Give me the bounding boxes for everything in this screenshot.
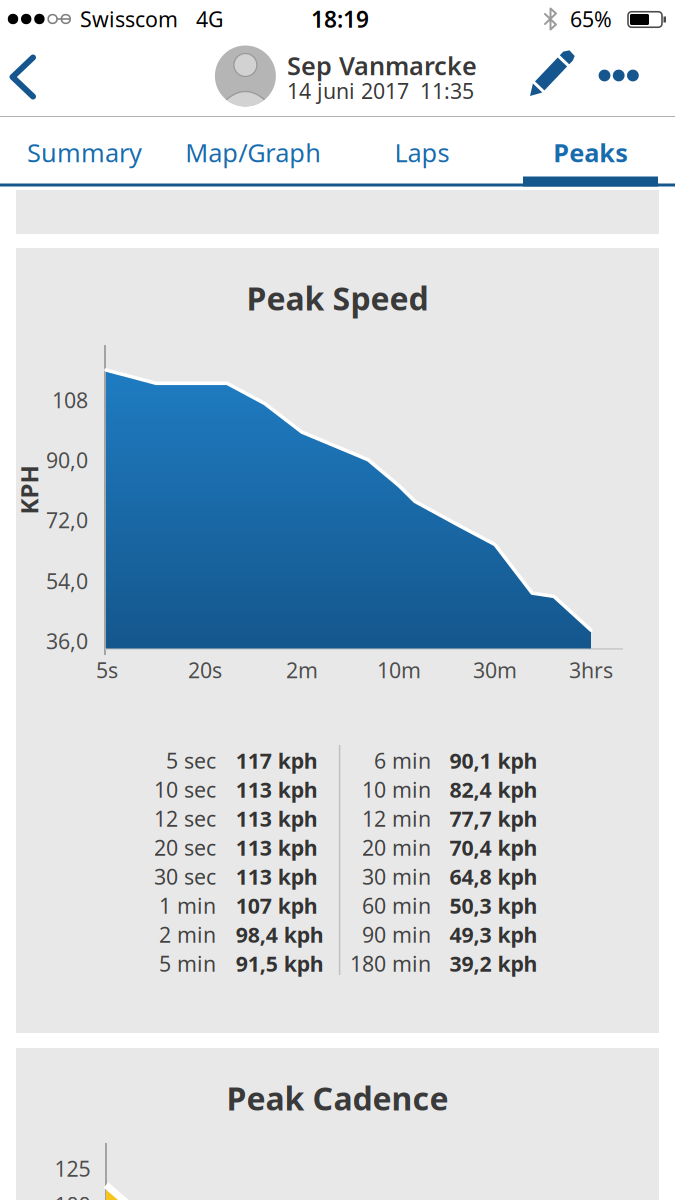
staticText: 113 kph [236,833,318,862]
staticText: 30m [473,656,517,684]
staticText: 12 min [362,804,431,833]
staticText: Laps [394,136,449,169]
staticText: 20s [188,656,222,684]
staticText: 36,0 [46,627,88,655]
staticText: 180 min [350,949,431,978]
staticText: 18:19 [311,4,369,34]
staticText: 100 [54,1190,90,1200]
staticText: 20 sec [154,833,216,862]
staticText: 54,0 [46,567,88,595]
staticText: 64,8 kph [450,862,538,891]
staticText: 5s [96,656,118,684]
staticText: Sep Vanmarcke [287,49,477,82]
staticText: 5 min [159,949,216,978]
staticText: 49,3 kph [450,920,538,949]
staticText: 113 kph [236,775,318,804]
staticText: 90 min [362,920,431,949]
staticText: 11:35 [420,76,474,105]
staticText: 113 kph [236,804,318,833]
staticText: 30 min [362,862,431,891]
staticText: 60 min [362,891,431,920]
staticText: 50,3 kph [450,891,538,920]
staticText: 70,4 kph [450,833,538,862]
staticText: 30 sec [154,862,216,891]
staticText: 10m [377,656,421,684]
staticText: 82,4 kph [450,775,538,804]
staticText: 39,2 kph [450,949,538,978]
staticText: 108 [52,386,88,414]
staticText: 77,7 kph [450,804,538,833]
staticText: Peaks [553,136,628,169]
button[interactable]: Edit [527,48,577,98]
staticText: 107 kph [236,891,318,920]
staticText: 10 min [362,775,431,804]
staticText: 2 min [159,920,216,949]
staticText: 65% [570,5,612,33]
staticText: 6 min [374,746,431,775]
staticText: KPH [4,474,53,506]
staticText: 20 min [362,833,431,862]
staticText: Map/Graph [185,136,321,169]
staticText: 117 kph [236,746,318,775]
staticText: Swisscom [80,5,178,33]
staticText: 125 [54,1154,90,1183]
button[interactable]: More [599,70,639,81]
staticText: 3hrs [569,656,613,684]
staticText: 90,1 kph [450,746,538,775]
staticText: 113 kph [236,862,318,891]
button[interactable]: Summary [0,117,169,188]
button[interactable]: Peaks [506,117,675,188]
staticText: 10 sec [154,775,216,804]
staticText: 14 juni 2017 [287,76,409,105]
staticText: 98,4 kph [236,920,324,949]
button[interactable]: Laps [337,117,506,188]
staticText: 12 sec [154,804,216,833]
staticText: 90,0 [46,446,88,474]
staticText: Summary [27,136,142,169]
staticText: 72,0 [46,506,88,534]
button[interactable]: Map/Graph [169,117,338,188]
staticText: 4G [196,5,224,33]
staticText: Peak Speed [246,277,428,319]
button[interactable]: Back [4,53,50,101]
staticText: 91,5 kph [236,949,324,978]
staticText: 1 min [159,891,216,920]
staticText: 2m [286,656,318,684]
staticText: Peak Cadence [226,1077,448,1119]
staticText: 5 sec [166,746,216,775]
